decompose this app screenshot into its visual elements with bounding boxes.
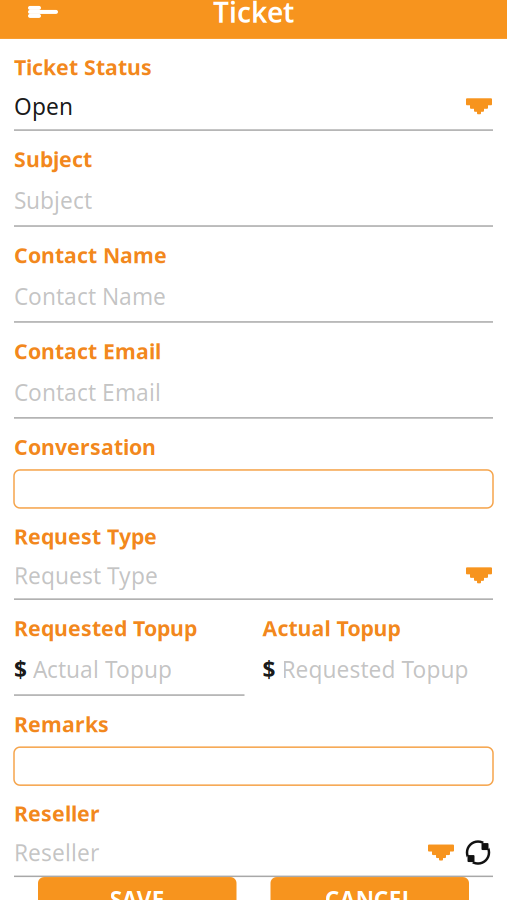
staticText: Request Type [14, 522, 157, 550]
button[interactable]: Refresh Reseller [455, 837, 493, 867]
staticText: Remarks [14, 710, 109, 738]
staticText: Actual Topup [262, 614, 400, 642]
button[interactable]: Open Request Type menu [465, 565, 493, 585]
staticText: $ [262, 654, 275, 684]
button[interactable]: Remarks [14, 738, 493, 785]
staticText: Open [14, 91, 73, 121]
staticText: Requested Topup [281, 654, 468, 684]
staticText: Subject [14, 185, 92, 215]
staticText: Requested Topup [14, 614, 197, 642]
staticText: CANCEL [325, 884, 415, 900]
staticText: Conversation [14, 433, 156, 461]
staticText: Contact Name [14, 241, 167, 269]
staticText: Contact Email [14, 377, 161, 407]
staticText: Request Type [14, 560, 158, 590]
button[interactable]: CANCEL [270, 877, 469, 900]
staticText: Contact Name [14, 281, 166, 311]
staticText: Ticket Status [14, 53, 152, 81]
button[interactable]: Back [16, 0, 70, 34]
staticText: Ticket [213, 0, 294, 31]
staticText: $ [14, 654, 27, 684]
staticText: Contact Email [14, 337, 161, 365]
staticText: Subject [14, 145, 92, 173]
staticText: SAVE [110, 884, 165, 900]
staticText: Reseller [14, 837, 99, 868]
staticText: Actual Topup [33, 654, 172, 684]
button[interactable]: Open Ticket Status menu [465, 96, 493, 116]
button[interactable]: Open Reseller menu [427, 842, 455, 862]
staticText: Reseller [14, 799, 100, 827]
button[interactable]: Conversation [14, 461, 493, 508]
button[interactable]: SAVE [38, 877, 236, 900]
